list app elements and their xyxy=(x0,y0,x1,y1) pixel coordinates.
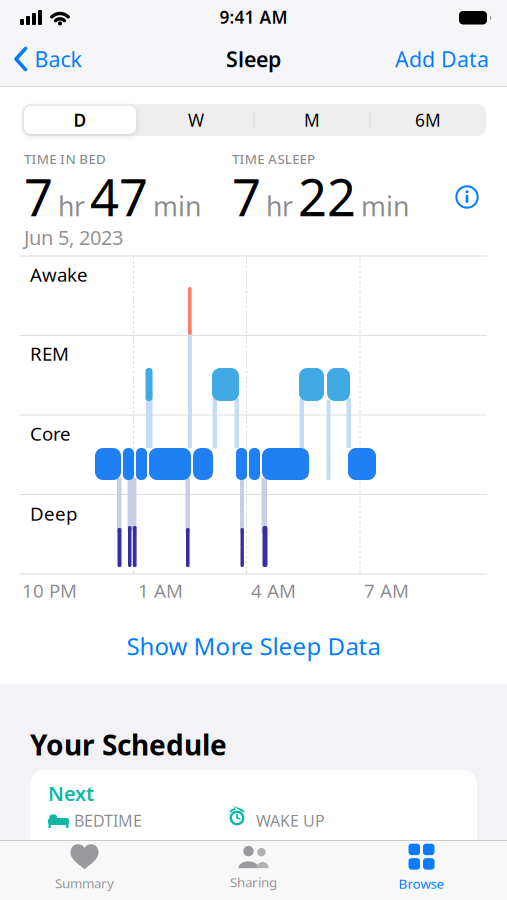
staticText: BEDTIME xyxy=(74,810,142,831)
staticText: W xyxy=(188,108,204,131)
button[interactable]: Summary xyxy=(55,844,114,892)
staticText: hr xyxy=(266,188,293,224)
staticText: min xyxy=(361,188,409,224)
button[interactable] xyxy=(455,185,479,209)
staticText: 6M xyxy=(415,108,441,131)
staticText: Jun 5, 2023 xyxy=(24,224,123,251)
staticText: 7 AM xyxy=(364,578,409,603)
button[interactable]: Browse xyxy=(398,844,444,892)
staticText: 4 AM xyxy=(251,578,296,603)
button[interactable]: W xyxy=(156,105,236,135)
button[interactable]: M xyxy=(272,105,352,135)
staticText: Show More Sleep Data xyxy=(126,630,380,662)
staticText: D xyxy=(73,108,86,131)
staticText: TIME ASLEEP xyxy=(232,150,315,168)
staticText: Deep xyxy=(30,501,77,526)
staticText: Next xyxy=(48,780,94,807)
staticText: Sharing xyxy=(230,873,277,891)
staticText: TIME IN BED xyxy=(24,150,106,168)
staticText: M xyxy=(304,108,320,131)
staticText: WAKE UP xyxy=(256,810,325,831)
staticText: min xyxy=(153,188,201,224)
staticText: Back xyxy=(34,45,81,73)
staticText: 7 xyxy=(24,163,53,230)
staticText: 22 xyxy=(298,163,356,230)
staticText: Core xyxy=(30,421,71,446)
staticText: Awake xyxy=(30,262,88,287)
staticText: 10 PM xyxy=(22,578,77,603)
staticText: Your Schedule xyxy=(30,726,227,763)
button[interactable]: Add Data xyxy=(395,45,489,73)
staticText: 7 xyxy=(232,163,261,230)
staticText: 47 xyxy=(90,163,148,230)
staticText: Summary xyxy=(55,874,114,892)
staticText: 1 AM xyxy=(138,578,183,603)
button[interactable]: Sharing xyxy=(230,845,277,891)
staticText: REM xyxy=(30,341,69,366)
button[interactable]: 6M xyxy=(388,105,468,135)
button[interactable]: D xyxy=(24,106,136,134)
staticText: 9:41 AM xyxy=(219,5,287,28)
staticText: Sleep xyxy=(226,45,281,73)
button[interactable]: Next xyxy=(30,770,477,860)
button[interactable]: Back xyxy=(14,45,81,73)
button[interactable]: Show More Sleep Data xyxy=(126,630,380,662)
staticText: Browse xyxy=(398,875,444,892)
staticText: Add Data xyxy=(395,45,489,73)
staticText: hr xyxy=(58,188,85,224)
